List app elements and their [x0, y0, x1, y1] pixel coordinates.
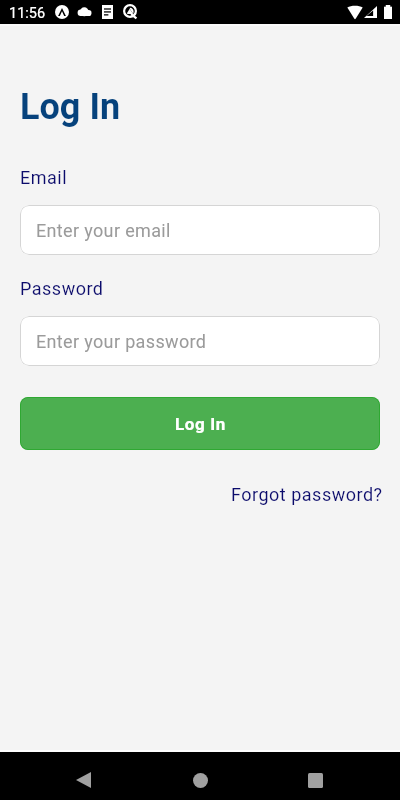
- staticText: Log In: [20, 86, 121, 128]
- staticText: Enter your email: [36, 220, 171, 241]
- staticText: Log In: [175, 414, 226, 434]
- staticText: 11:56: [9, 5, 46, 22]
- button[interactable]: Log In: [20, 397, 380, 450]
- button[interactable]: Home: [176, 756, 224, 800]
- button[interactable]: Back: [59, 756, 107, 800]
- button[interactable]: Enter your password: [20, 316, 380, 366]
- button[interactable]: Enter your email: [20, 205, 380, 255]
- staticText: Email: [20, 167, 68, 188]
- staticText: Enter your password: [36, 331, 207, 352]
- button[interactable]: Recent apps: [291, 756, 339, 800]
- staticText: Password: [20, 278, 104, 299]
- button[interactable]: Forgot password?: [231, 484, 400, 505]
- staticText: Forgot password?: [231, 484, 383, 505]
